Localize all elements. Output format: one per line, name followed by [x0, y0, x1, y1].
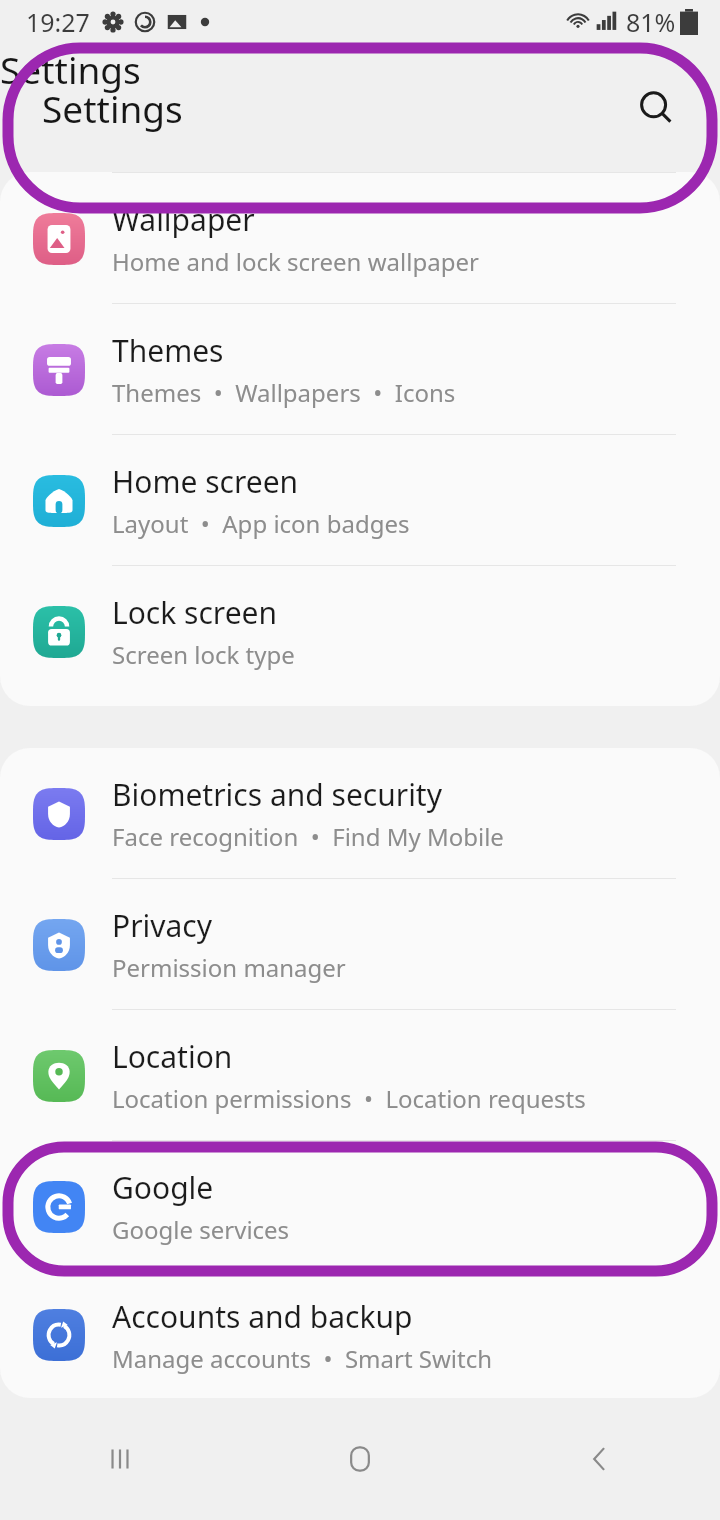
staticText: Location [112, 1036, 233, 1077]
button[interactable]: Wallpaper [0, 173, 720, 304]
button[interactable]: Privacy [0, 879, 720, 1010]
staticText: Home screen [112, 461, 299, 502]
button[interactable]: Lock screen [0, 566, 720, 697]
button[interactable]: Back [480, 1398, 720, 1520]
staticText: Face recognition • Find My Mobile [112, 820, 504, 853]
staticText: Settings [42, 83, 183, 133]
staticText: Location permissions • Location requests [112, 1082, 586, 1115]
button[interactable]: Home [240, 1398, 480, 1520]
staticText: 81% [626, 5, 676, 39]
button[interactable]: Search settings [628, 80, 684, 136]
staticText: Privacy [112, 905, 213, 946]
button[interactable]: Biometrics and security [0, 748, 720, 879]
button[interactable]: Location [0, 1010, 720, 1141]
staticText: Biometrics and security [112, 774, 442, 815]
button[interactable]: Google [0, 1141, 720, 1272]
staticText: Permission manager [112, 951, 346, 984]
staticText: Home and lock screen wallpaper [112, 245, 479, 278]
staticText: 19:27 [26, 5, 90, 39]
staticText: Lock screen [112, 592, 278, 633]
staticText: Settings [0, 44, 141, 94]
button[interactable]: Themes [0, 304, 720, 435]
staticText: Google services [112, 1213, 290, 1246]
staticText: Themes [112, 330, 224, 371]
button[interactable]: Home screen [0, 435, 720, 566]
button[interactable]: Accounts and backup [0, 1272, 720, 1398]
staticText: Layout • App icon badges [112, 507, 410, 540]
staticText: Themes • Wallpapers • Icons [112, 376, 456, 409]
staticText: Screen lock type [112, 638, 295, 671]
button[interactable]: Settings [0, 44, 720, 172]
staticText: Manage accounts • Smart Switch [112, 1342, 493, 1375]
button[interactable]: Recent apps [0, 1398, 240, 1520]
staticText: Accounts and backup [112, 1296, 413, 1337]
staticText: Wallpaper [112, 199, 255, 240]
staticText: Google [112, 1167, 214, 1208]
